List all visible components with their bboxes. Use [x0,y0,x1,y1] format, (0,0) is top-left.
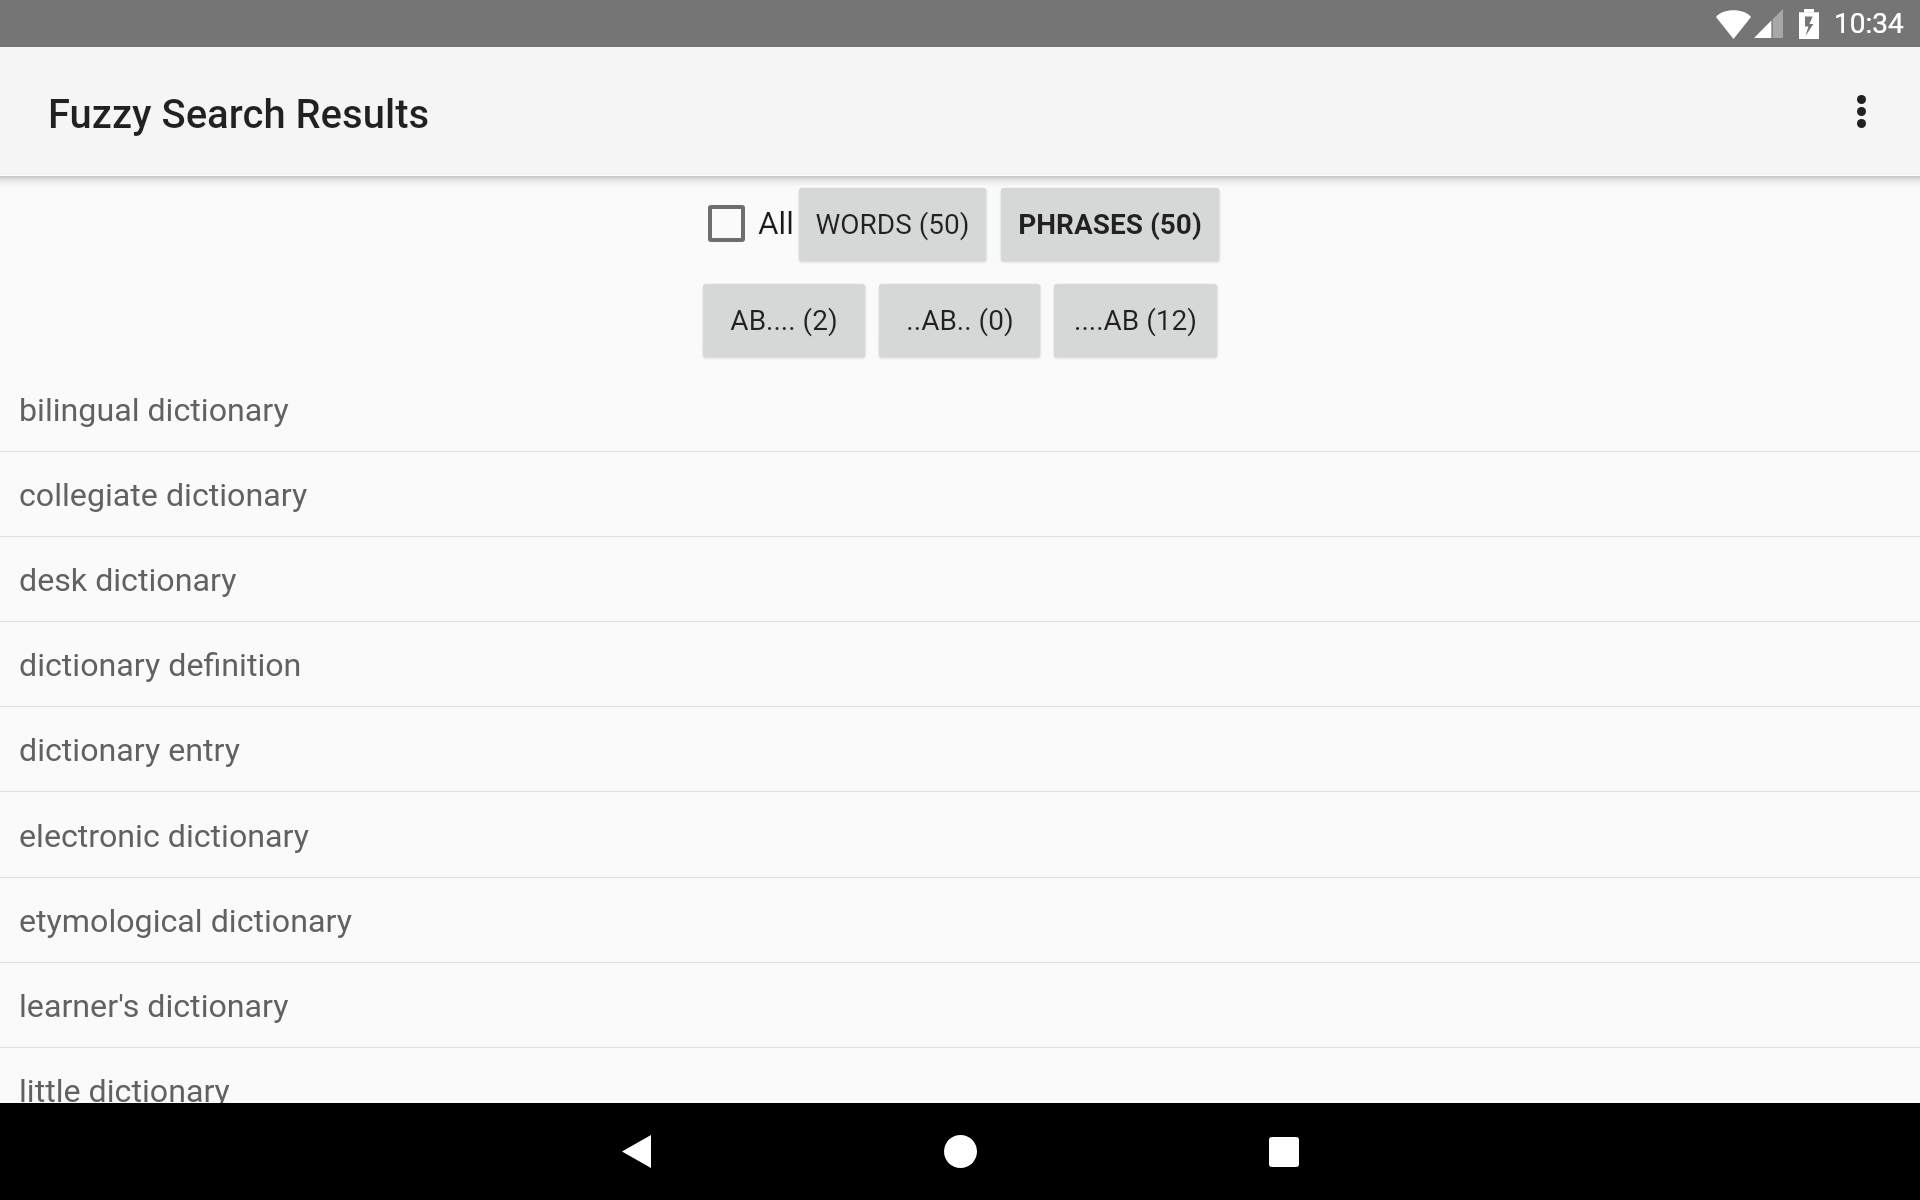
button[interactable]: More options [1821,71,1901,151]
button[interactable]: etymological dictionary [0,878,1920,963]
button[interactable]: All [708,205,792,242]
button[interactable]: Home [900,1103,1020,1200]
button[interactable]: dictionary entry [0,707,1920,792]
button[interactable]: Recent apps [1224,1103,1344,1200]
button[interactable]: PHRASES (50) [1001,188,1219,261]
staticText: All [758,205,792,242]
staticText: electronic dictionary [19,817,309,855]
staticText: AB.... (2) [730,304,838,337]
button[interactable]: ..AB.. (0) [879,284,1040,357]
button[interactable]: collegiate dictionary [0,452,1920,537]
staticText: bilingual dictionary [19,391,289,429]
button[interactable]: electronic dictionary [0,793,1920,878]
staticText: dictionary definition [19,646,302,684]
button[interactable]: bilingual dictionary [0,367,1920,452]
button[interactable]: dictionary definition [0,622,1920,707]
staticText: 10:34 [1834,7,1904,40]
staticText: ....AB (12) [1074,304,1197,337]
staticText: little dictionary [19,1072,230,1103]
button[interactable]: little dictionary [0,1048,1920,1103]
button[interactable]: AB.... (2) [703,284,865,357]
button[interactable]: desk dictionary [0,537,1920,622]
staticText: ..AB.. (0) [906,304,1014,337]
staticText: learner's dictionary [19,987,289,1025]
staticText: dictionary entry [19,731,241,769]
staticText: etymological dictionary [19,902,352,940]
staticText: desk dictionary [19,561,237,599]
staticText: Fuzzy Search Results [48,91,430,138]
button[interactable]: ....AB (12) [1054,284,1217,357]
staticText: WORDS (50) [815,208,970,241]
staticText: collegiate dictionary [19,476,308,514]
staticText: PHRASES (50) [1018,208,1202,241]
button[interactable]: learner's dictionary [0,963,1920,1048]
button[interactable]: WORDS (50) [799,188,986,261]
button[interactable]: Back [576,1103,696,1200]
